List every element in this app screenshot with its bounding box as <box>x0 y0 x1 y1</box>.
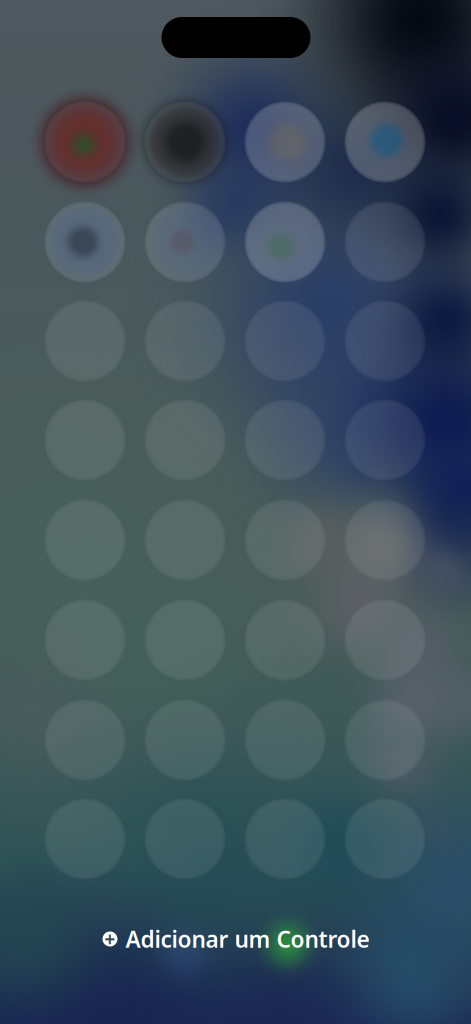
staticText: + <box>104 927 115 951</box>
staticText: Adicionar um Controle <box>125 924 369 954</box>
button[interactable]: + <box>88 914 383 964</box>
